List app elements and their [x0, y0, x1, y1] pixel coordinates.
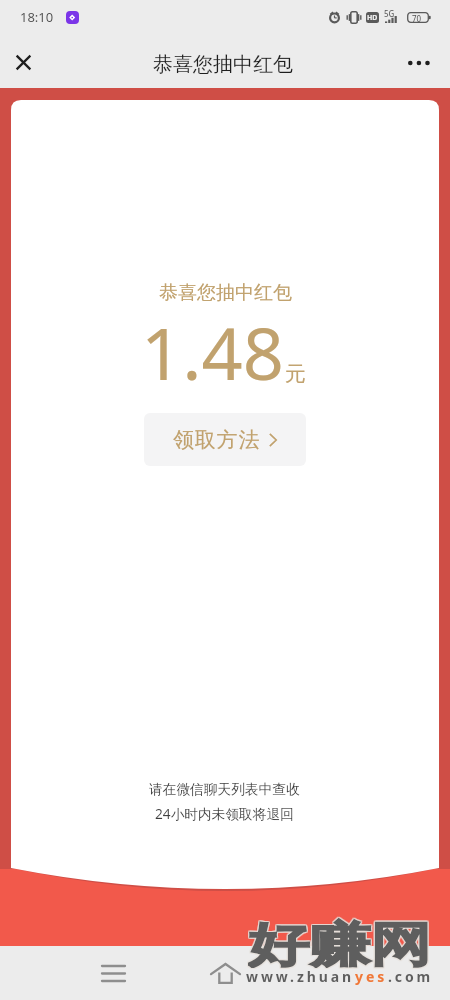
staticText: 好赚网	[249, 916, 432, 968]
staticText: 恭喜您抽中红包	[159, 281, 292, 305]
staticText: 好赚网	[248, 917, 431, 969]
staticText: .com	[388, 967, 434, 986]
staticText: 好赚网	[249, 917, 432, 969]
staticText: 70	[412, 13, 422, 24]
button[interactable]: Recent apps	[83, 947, 143, 1000]
staticText: 好赚网	[247, 917, 430, 969]
button[interactable]: Home	[195, 947, 255, 1000]
staticText: 好赚网	[248, 915, 431, 967]
staticText: 恭喜您抽中红包	[153, 52, 293, 77]
staticText: yes	[355, 967, 388, 986]
staticText: 24小时内未领取将退回	[155, 804, 294, 823]
staticText: www.zhuan	[246, 967, 355, 986]
staticText: 好赚网	[248, 916, 431, 968]
staticText: 元	[285, 361, 306, 387]
staticText: 18:10	[20, 8, 54, 26]
staticText: 好赚网	[247, 916, 430, 968]
staticText: 1.48	[141, 303, 284, 401]
staticText: 5G	[384, 8, 395, 19]
button[interactable]: 领取方法	[144, 413, 306, 466]
staticText: 请在微信聊天列表中查收	[149, 781, 300, 798]
staticText: 领取方法	[173, 427, 261, 453]
button[interactable]: More options	[396, 36, 442, 88]
staticText: 好赚网	[247, 915, 430, 967]
staticText: HD	[367, 13, 378, 23]
staticText: 好赚网	[249, 915, 432, 967]
button[interactable]: Close	[0, 36, 46, 88]
